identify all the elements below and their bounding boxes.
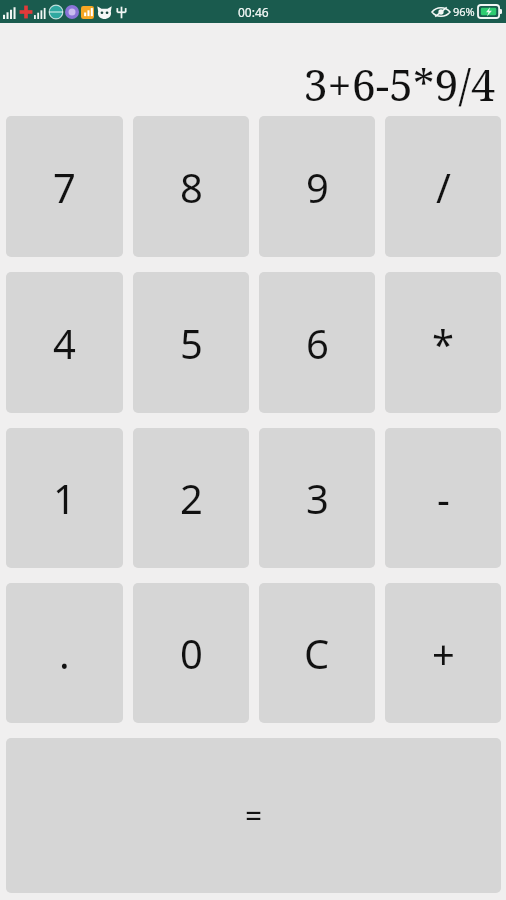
- staticText: 3+6-5*9/4: [303, 55, 495, 114]
- staticText: -: [437, 471, 450, 525]
- staticText: =: [245, 795, 263, 836]
- staticText: 96%: [453, 4, 475, 19]
- button[interactable]: -: [385, 428, 501, 568]
- staticText: 4: [53, 316, 76, 370]
- button[interactable]: +: [385, 583, 501, 723]
- staticText: .: [59, 626, 70, 680]
- staticText: +: [432, 626, 455, 680]
- button[interactable]: /: [385, 116, 501, 257]
- staticText: 2: [180, 471, 203, 525]
- button[interactable]: 0: [133, 583, 249, 723]
- button[interactable]: C: [259, 583, 375, 723]
- button[interactable]: 7: [6, 116, 123, 257]
- button[interactable]: 4: [6, 272, 123, 413]
- button[interactable]: *: [385, 272, 501, 413]
- button[interactable]: 2: [133, 428, 249, 568]
- button[interactable]: 8: [133, 116, 249, 257]
- staticText: *: [432, 316, 455, 370]
- staticText: 00:46: [238, 4, 269, 20]
- staticText: 6: [306, 316, 329, 370]
- button[interactable]: 6: [259, 272, 375, 413]
- staticText: 1: [53, 471, 76, 525]
- staticText: 9: [306, 160, 329, 214]
- staticText: /: [436, 160, 451, 214]
- staticText: 0: [180, 626, 203, 680]
- button[interactable]: 5: [133, 272, 249, 413]
- staticText: 7: [53, 160, 76, 214]
- button[interactable]: 3: [259, 428, 375, 568]
- button[interactable]: .: [6, 583, 123, 723]
- staticText: 8: [180, 160, 203, 214]
- button[interactable]: 1: [6, 428, 123, 568]
- button[interactable]: =: [6, 738, 501, 893]
- staticText: 3: [306, 471, 329, 525]
- staticText: C: [304, 626, 330, 680]
- button[interactable]: 9: [259, 116, 375, 257]
- staticText: 5: [180, 316, 203, 370]
